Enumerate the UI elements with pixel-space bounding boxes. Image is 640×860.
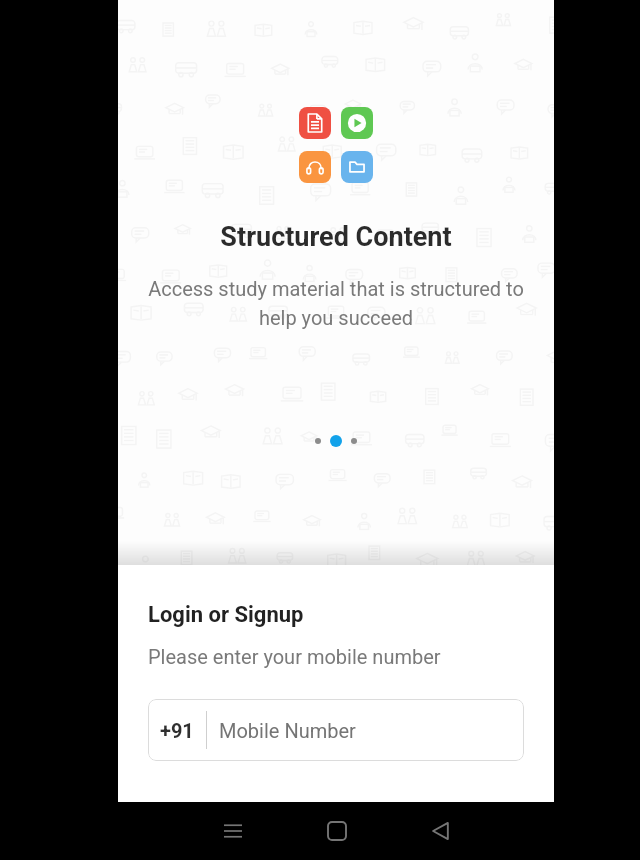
button[interactable]: Back	[417, 807, 465, 855]
button[interactable]: Page 2, current	[330, 435, 342, 447]
staticText: Login or Signup	[148, 602, 304, 628]
button[interactable]: Page 3	[351, 438, 357, 444]
staticText: Structured Content	[220, 221, 452, 253]
staticText: +91	[160, 719, 194, 742]
staticText: Please enter your mobile number	[148, 645, 441, 668]
button[interactable]: Notes	[299, 107, 331, 139]
button[interactable]: Videos	[341, 107, 373, 139]
button[interactable]: +91	[148, 699, 524, 761]
staticText: Mobile Number	[219, 719, 356, 742]
button[interactable]: Recent apps	[209, 807, 257, 855]
button[interactable]: Files	[341, 151, 373, 183]
button[interactable]: Page 1	[315, 438, 321, 444]
staticText: Access study material that is structured…	[140, 277, 532, 330]
button[interactable]: Audio	[299, 151, 331, 183]
button[interactable]: Home	[313, 807, 361, 855]
